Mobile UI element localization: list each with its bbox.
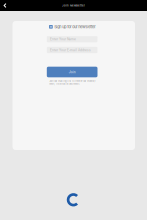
staticText: Join Newsletter (62, 4, 85, 7)
staticText: Enter Your E-mail Address (50, 48, 91, 52)
button[interactable]: Back (0, 0, 10, 11)
staticText: Enter Your Name (50, 37, 76, 41)
staticText: Join (69, 70, 76, 74)
button[interactable]: Enter Your Name (47, 36, 97, 42)
staticText: Join our mailing list to receive our mon… (49, 80, 95, 85)
button[interactable]: Enter Your E-mail Address (47, 47, 97, 53)
button[interactable]: Join (47, 67, 97, 77)
staticText: Sign up for our newsletter (54, 24, 95, 29)
